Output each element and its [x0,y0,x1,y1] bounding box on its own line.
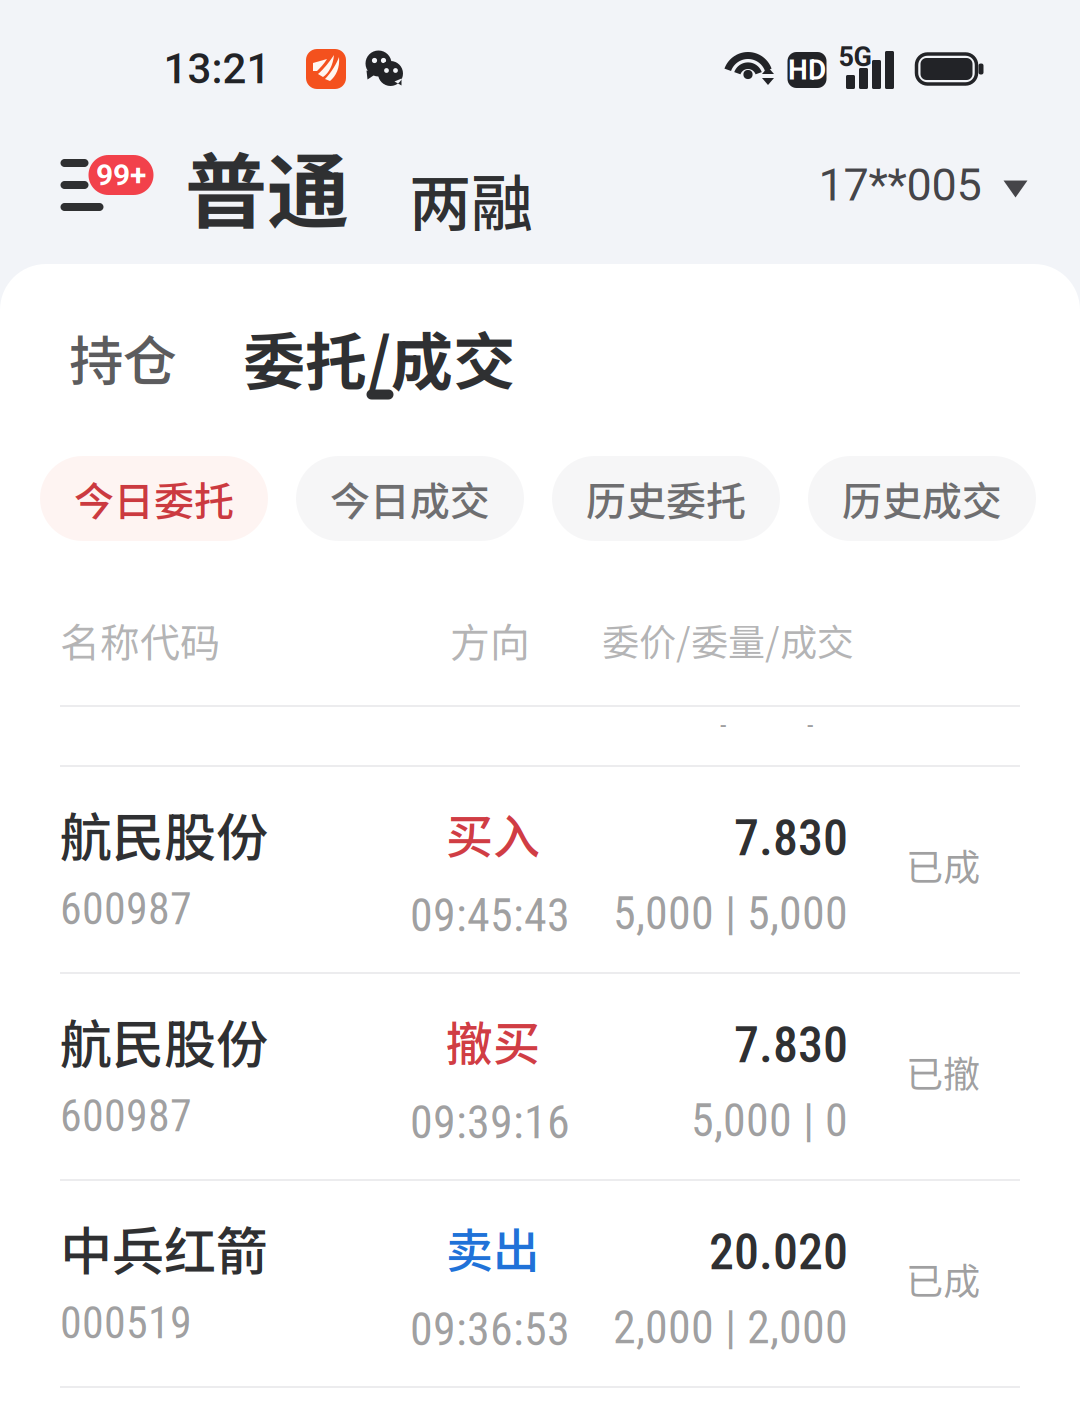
button[interactable]: 历史委托 [552,456,780,541]
staticText: 历史成交 [842,469,1002,527]
staticText: 17**005 [818,159,981,211]
staticText: 600987 [60,1090,192,1142]
staticText: 已撤 [906,1045,980,1098]
staticText: 09:45:43 [410,888,570,942]
staticText: - [807,710,813,740]
staticText: 20.020 [709,1223,848,1281]
staticText: 5,000 | 5,000 [613,886,848,940]
button[interactable]: 普通 [185,127,349,245]
staticText: 历史委托 [586,469,746,527]
staticText: 撤买 [446,1006,540,1074]
button[interactable]: 持仓 [69,264,177,451]
staticText: 已成 [906,1252,980,1305]
staticText: 99+ [96,157,146,193]
staticText: 航民股份 [60,1003,268,1078]
staticText: - [720,710,726,740]
staticText: 持仓 [69,318,177,397]
staticText: 方向 [450,611,530,669]
staticText: 600987 [60,883,192,935]
staticText: 7.830 [734,1016,848,1074]
button[interactable]: 历史成交 [808,456,1036,541]
staticText: 13:21 [163,44,270,94]
staticText: 5G [838,41,871,73]
staticText: 两融 [409,154,533,244]
staticText: 今日成交 [330,469,490,527]
staticText: 航民股份 [60,796,268,871]
staticText: 5,000 | 0 [691,1093,848,1147]
staticText: 今日委托 [74,469,234,527]
button[interactable]: 航民股份 [0,767,1080,974]
button[interactable]: 委托/成交 [243,264,515,451]
staticText: 7.830 [734,809,848,867]
staticText: 000519 [60,1297,192,1349]
button[interactable]: 中兵红箭 [0,1181,1080,1388]
staticText: 买入 [446,799,540,867]
staticText: 名称代码 [60,611,220,669]
button[interactable]: 航民股份 [0,974,1080,1181]
staticText: 09:39:16 [410,1095,570,1149]
staticText: 2,000 | 2,000 [613,1300,848,1354]
button[interactable]: 今日委托 [40,456,268,541]
staticText: 普通 [185,127,349,245]
staticText: 委托/成交 [243,313,515,402]
staticText: 委价/委量/成交 [602,613,854,667]
staticText: 卖出 [446,1213,540,1281]
staticText: 已成 [906,838,980,891]
staticText: HD [788,54,826,86]
staticText: 09:36:53 [410,1302,570,1356]
button[interactable]: Menu, 99 plus notifications [60,152,155,212]
button[interactable]: 今日成交 [296,456,524,541]
button[interactable]: 17**005 [818,159,1027,211]
button[interactable]: 两融 [409,154,533,244]
staticText: 中兵红箭 [60,1210,268,1285]
